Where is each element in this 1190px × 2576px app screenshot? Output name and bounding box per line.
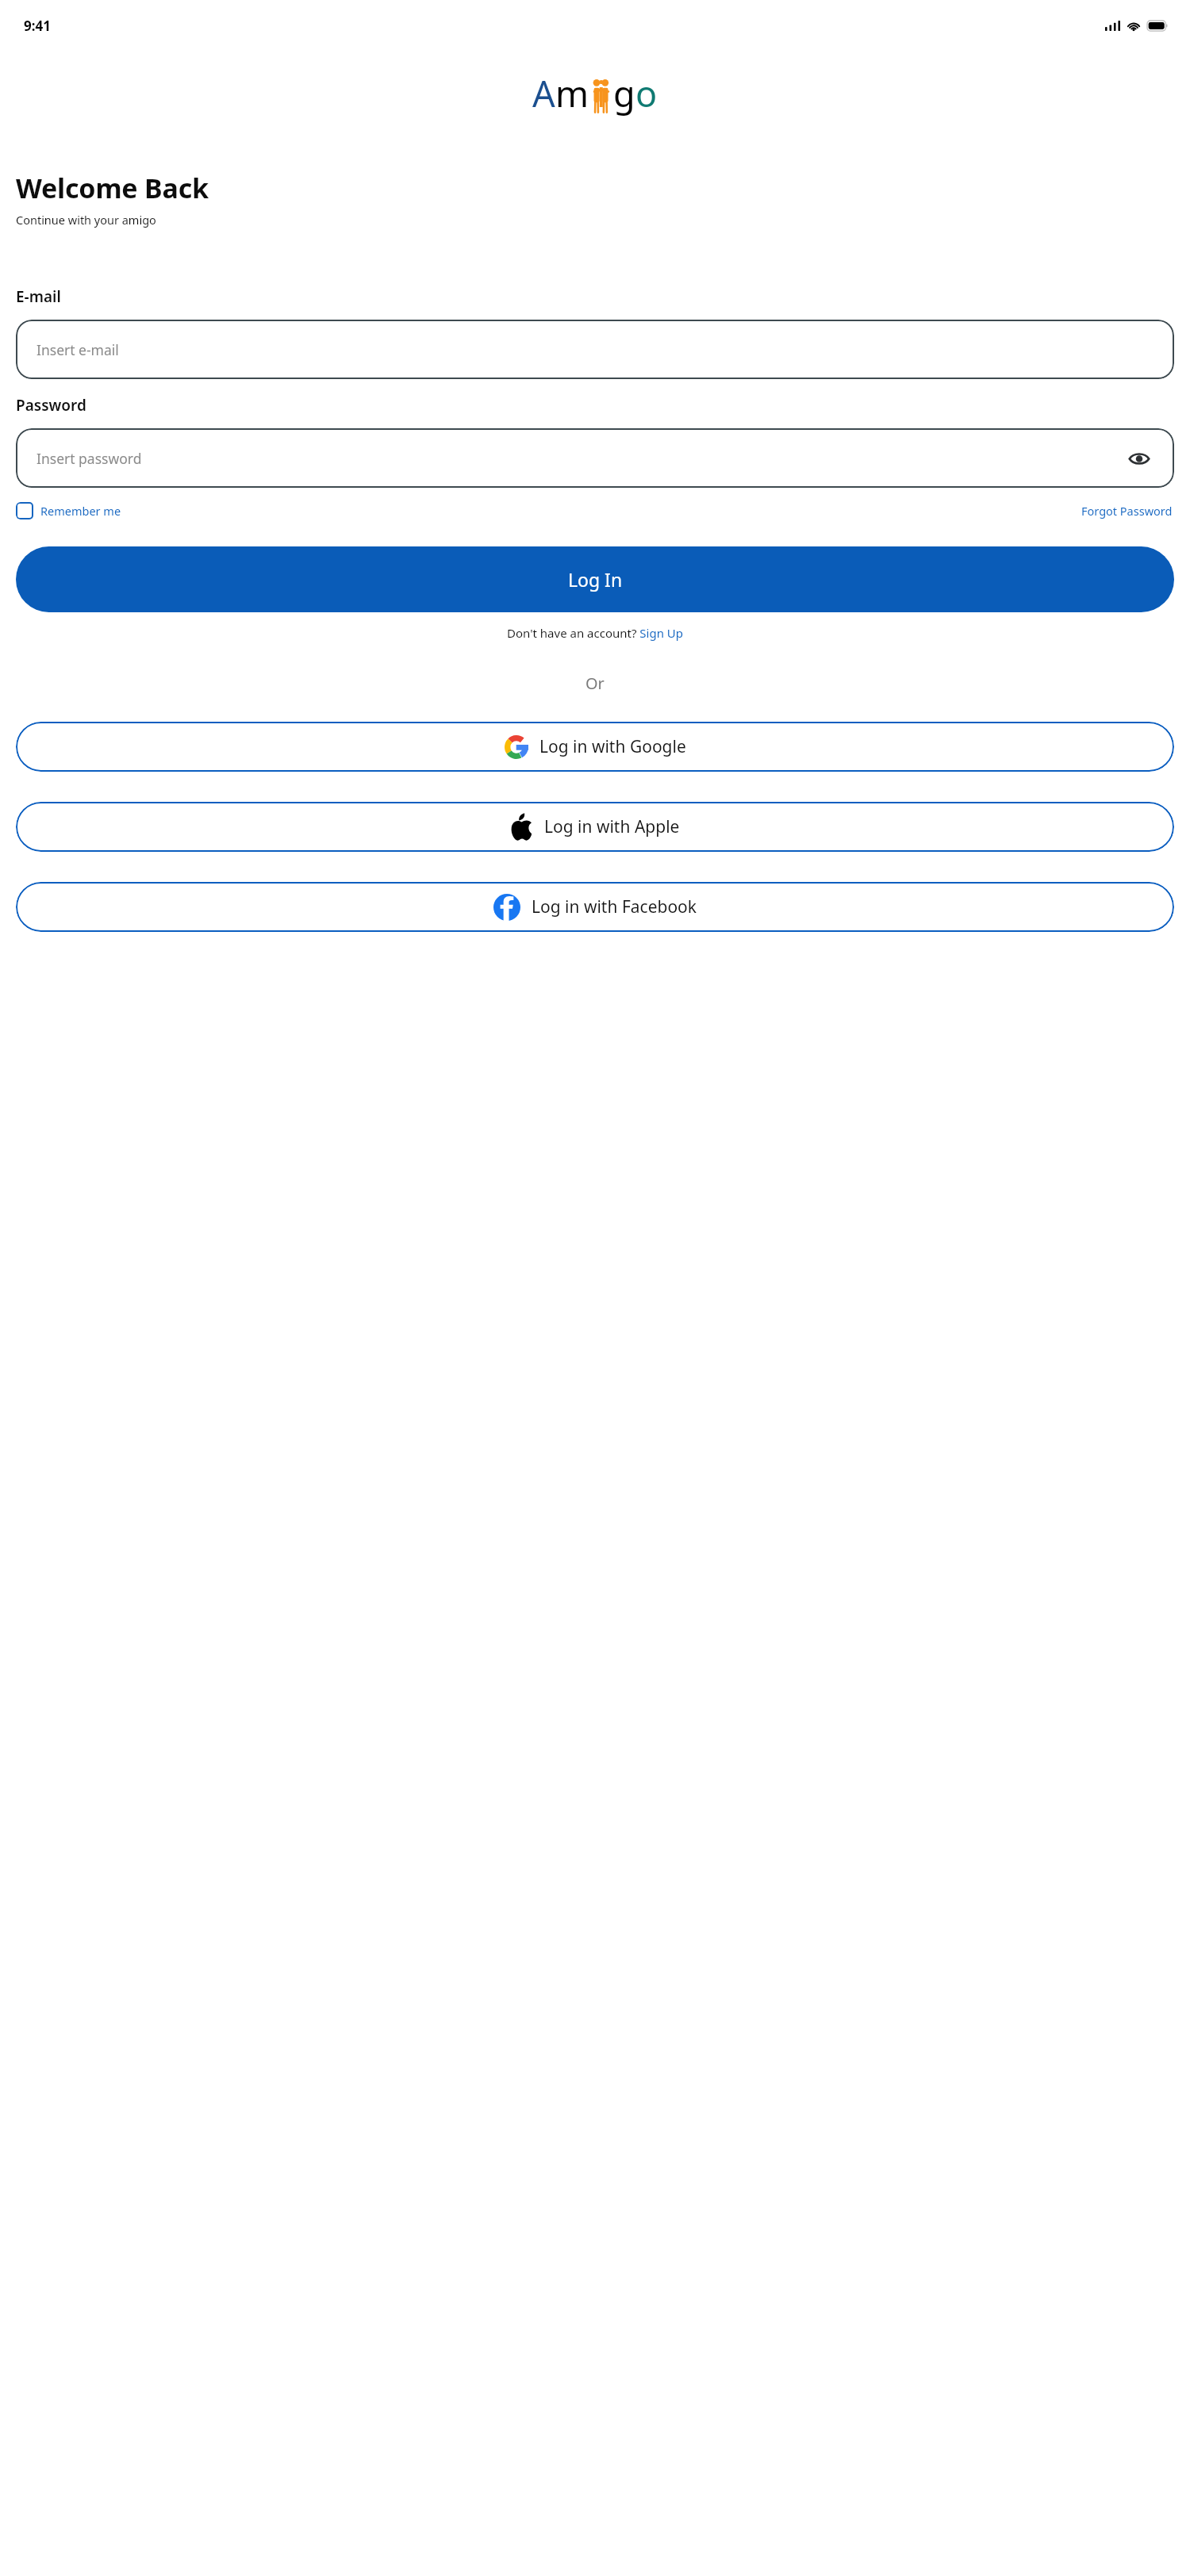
staticText: Password bbox=[16, 395, 86, 416]
button[interactable]: Don't have an account? Sign Up bbox=[507, 625, 684, 641]
staticText: Remember me bbox=[40, 503, 121, 519]
staticText: 9:41 bbox=[24, 17, 51, 35]
staticText: Log in with Google bbox=[539, 735, 686, 758]
button[interactable]: Remember me bbox=[16, 502, 125, 519]
staticText: Or bbox=[585, 673, 605, 694]
button[interactable]: Log in with Facebook bbox=[16, 882, 1174, 932]
staticText: Forgot Password bbox=[1081, 503, 1173, 519]
staticText: Log In bbox=[568, 567, 623, 592]
staticText: Log in with Facebook bbox=[532, 895, 697, 918]
staticText: Insert e-mail bbox=[36, 340, 119, 359]
staticText: Don't have an account? Sign Up bbox=[507, 625, 684, 641]
staticText: Log in with Apple bbox=[544, 815, 680, 838]
button[interactable]: Forgot Password bbox=[1080, 500, 1174, 522]
staticText: Continue with your amigo bbox=[16, 212, 156, 228]
staticText: m bbox=[555, 69, 589, 117]
staticText: Welcome Back bbox=[16, 170, 209, 206]
staticText: o bbox=[635, 69, 658, 117]
staticText: Insert password bbox=[36, 449, 142, 468]
button[interactable]: Insert e-mail bbox=[16, 320, 1174, 379]
button[interactable]: Log in with Apple bbox=[16, 802, 1174, 852]
button[interactable]: Log In bbox=[16, 546, 1174, 612]
button[interactable]: Insert password bbox=[16, 428, 1174, 488]
staticText: A bbox=[532, 69, 555, 117]
staticText: g bbox=[613, 69, 635, 117]
staticText: i bbox=[597, 69, 606, 117]
staticText: E-mail bbox=[16, 286, 61, 307]
button[interactable]: Show password bbox=[1125, 444, 1154, 473]
button[interactable]: Log in with Google bbox=[16, 722, 1174, 772]
